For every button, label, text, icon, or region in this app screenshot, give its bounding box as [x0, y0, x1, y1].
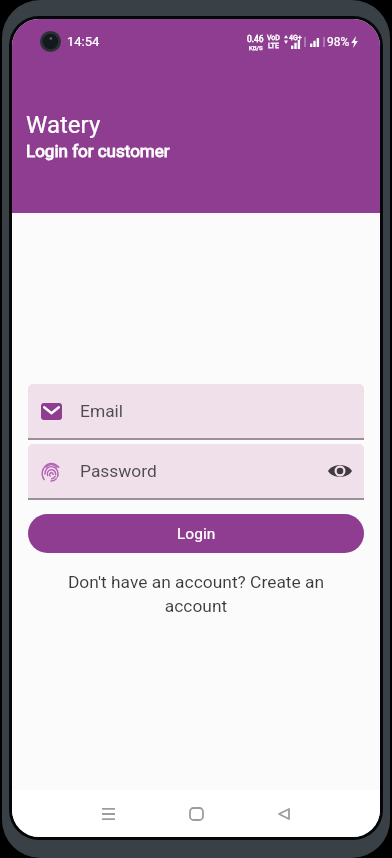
staticText: Login for customer: [26, 141, 170, 161]
staticText: 14:54: [67, 34, 100, 49]
button[interactable]: Login: [28, 514, 364, 553]
button[interactable]: Back: [261, 791, 307, 837]
button[interactable]: Fingerprint: [28, 444, 364, 498]
staticText: VoD: [267, 34, 280, 42]
button[interactable]: Don't have an account? Create an account: [52, 572, 340, 616]
button[interactable]: Recent apps: [85, 791, 131, 837]
button[interactable]: Home: [173, 791, 219, 837]
other: Email: [41, 403, 62, 420]
staticText: 0.46: [247, 34, 264, 44]
staticText: Login: [177, 525, 216, 543]
staticText: 98%: [327, 35, 350, 49]
staticText: Password: [80, 461, 157, 481]
staticText: Don't have an account? Create an account: [52, 572, 340, 616]
staticText: Email: [80, 401, 124, 421]
staticText: KB/S: [249, 44, 263, 51]
staticText: LTE: [268, 42, 279, 50]
button[interactable]: Email: [28, 384, 364, 438]
staticText: 4G+: [289, 34, 302, 42]
other: Fingerprint: [41, 460, 62, 483]
button[interactable]: Show password: [325, 454, 355, 488]
staticText: Watery: [26, 111, 101, 139]
